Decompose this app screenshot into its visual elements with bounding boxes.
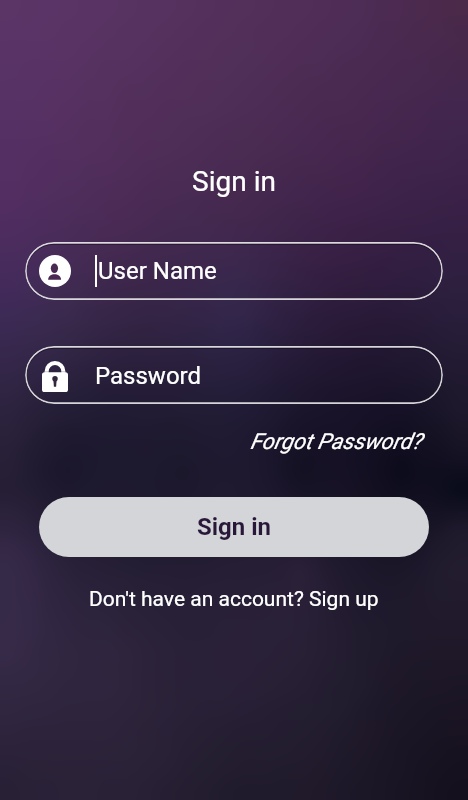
button[interactable]: Don't have an account? Sign up bbox=[89, 587, 379, 612]
staticText: Password bbox=[95, 362, 202, 390]
button[interactable]: Password bbox=[25, 346, 443, 404]
button[interactable]: Sign in bbox=[39, 497, 429, 557]
staticText: User Name bbox=[98, 257, 217, 285]
button[interactable]: User Name bbox=[25, 242, 443, 300]
button[interactable]: Forgot Password? bbox=[250, 429, 422, 455]
staticText: Sign in bbox=[0, 165, 468, 198]
staticText: Sign in bbox=[197, 513, 272, 541]
